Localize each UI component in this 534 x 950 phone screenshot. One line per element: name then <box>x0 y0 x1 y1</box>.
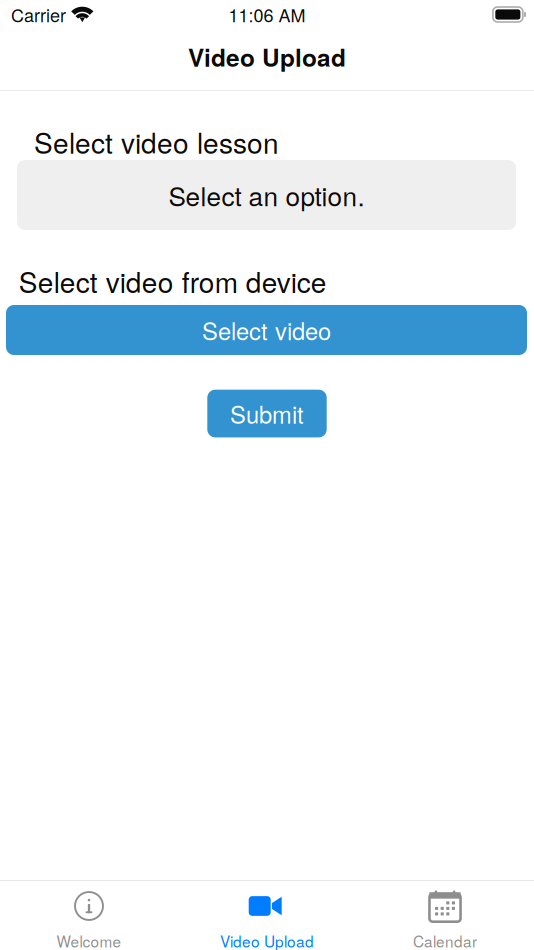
button[interactable]: Submit <box>207 390 327 437</box>
staticText: Select an option. <box>168 176 364 214</box>
button[interactable]: Calendar <box>356 880 534 950</box>
staticText: Submit <box>230 397 304 431</box>
button[interactable]: Video Upload <box>178 880 356 950</box>
button[interactable]: Select an option. <box>17 160 516 230</box>
staticText: 11:06 AM <box>228 2 305 27</box>
staticText: Carrier <box>11 2 66 27</box>
staticText: Welcome <box>56 930 121 950</box>
button[interactable]: Select video <box>6 305 527 355</box>
staticText: Select video <box>202 313 331 347</box>
staticText: Select video lesson <box>34 121 279 162</box>
staticText: Video Upload <box>220 930 314 950</box>
staticText: Calendar <box>413 930 477 950</box>
staticText: Video Upload <box>188 39 346 74</box>
button[interactable]: Welcome <box>0 880 178 950</box>
staticText: Select video from device <box>19 261 327 301</box>
